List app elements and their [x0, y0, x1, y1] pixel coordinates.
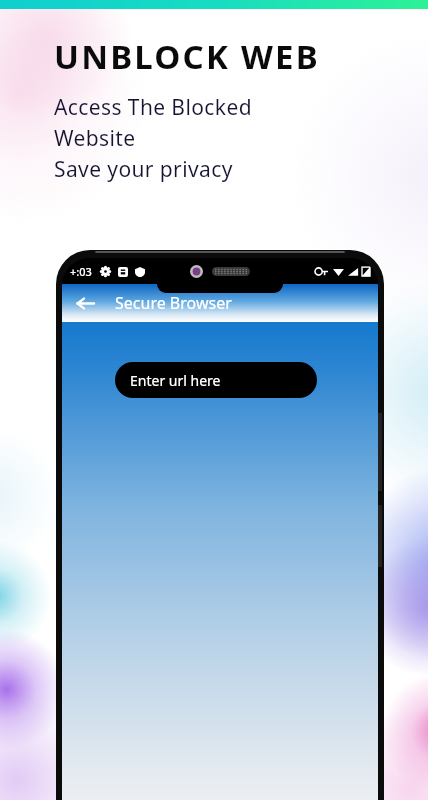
staticText: UNBLOCK WEB [54, 34, 320, 79]
button[interactable]: Enter url here [115, 362, 317, 398]
staticText: Enter url here [130, 371, 221, 390]
staticText: Access The Blocked Website Save your pri… [54, 93, 252, 183]
staticText: Secure Browser [115, 292, 232, 314]
staticText: +:03 [70, 264, 92, 279]
button[interactable]: Back [68, 286, 102, 320]
